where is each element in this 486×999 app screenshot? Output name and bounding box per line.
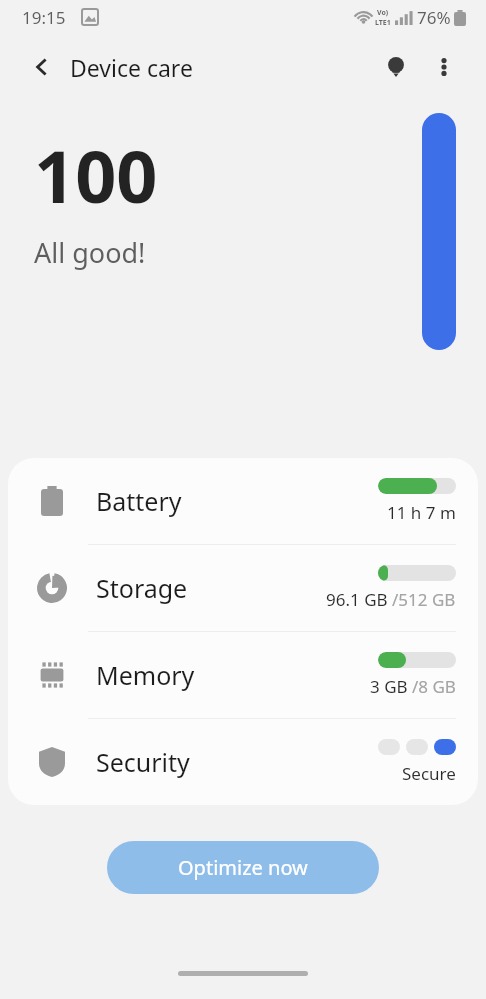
staticText: Battery	[96, 484, 182, 518]
staticText: 100	[34, 126, 158, 224]
staticText: 3 GB	[370, 675, 412, 698]
staticText: LTE1	[375, 18, 391, 28]
staticText: Security	[96, 745, 190, 779]
staticText: /8 GB	[412, 675, 456, 698]
staticText: All good!	[34, 234, 146, 271]
staticText: 96.1 GB	[326, 588, 392, 611]
button[interactable]: Memory	[8, 632, 478, 718]
button[interactable]: Optimize now	[107, 841, 379, 894]
staticText: 76%	[417, 6, 451, 29]
staticText: Device care	[70, 52, 193, 83]
button[interactable]: Back	[20, 45, 64, 89]
staticText: Vo)	[377, 8, 389, 18]
button[interactable]: Security	[8, 719, 478, 805]
button[interactable]: Tips	[374, 45, 418, 89]
button[interactable]: More options	[422, 45, 466, 89]
staticText: Secure	[402, 762, 456, 785]
staticText: /512 GB	[392, 588, 456, 611]
staticText: Memory	[96, 658, 195, 692]
staticText: 19:15	[22, 6, 66, 29]
button[interactable]: Storage	[8, 545, 478, 631]
button[interactable]: Battery	[8, 458, 478, 544]
staticText: Storage	[96, 571, 188, 605]
staticText: 11 h 7 m	[387, 501, 456, 524]
staticText: Optimize now	[178, 854, 308, 881]
